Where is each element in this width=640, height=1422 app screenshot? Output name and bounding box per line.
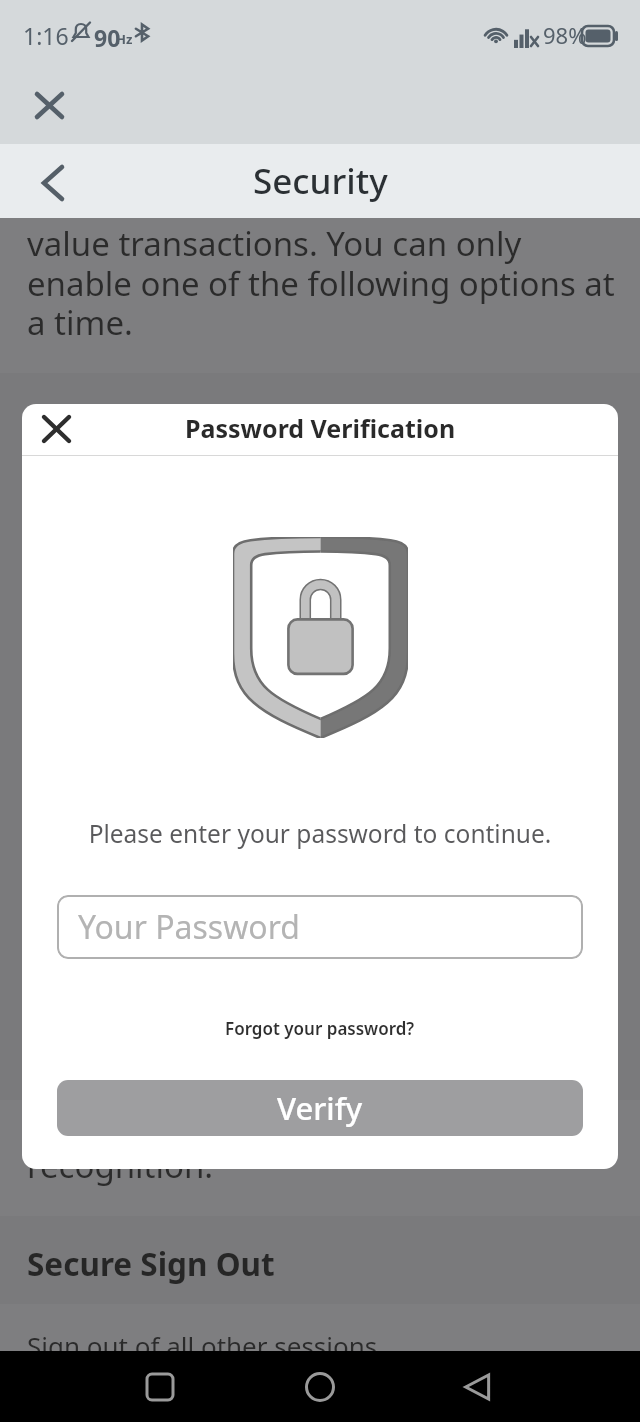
button[interactable]: Your Password <box>57 895 583 959</box>
staticText: Sign out of all other sessions <box>27 1328 378 1363</box>
staticText: 90 <box>94 22 121 53</box>
staticText: Security <box>253 157 388 205</box>
staticText: recognition. <box>27 1143 214 1188</box>
staticText: Forgot your password? <box>225 1017 415 1040</box>
staticText: Your Password <box>78 905 300 949</box>
staticText: 98% <box>543 20 587 50</box>
button[interactable]: Forgot your password? <box>217 1012 423 1045</box>
button[interactable]: Home <box>296 1363 344 1411</box>
button[interactable]: Close <box>23 79 76 132</box>
staticText: Please enter your password to continue. <box>22 817 618 850</box>
button[interactable]: Verify <box>57 1080 583 1136</box>
button[interactable]: Back <box>27 157 79 209</box>
button[interactable]: Recent apps <box>136 1363 184 1411</box>
staticText: Verify <box>277 1087 363 1129</box>
staticText: 1:16 <box>23 20 69 51</box>
button[interactable]: Back <box>454 1363 502 1411</box>
staticText: Password Verification <box>185 411 456 445</box>
staticText: Secure Sign Out <box>27 1242 275 1285</box>
staticText: value transactions. You can only enable … <box>27 221 615 344</box>
staticText: Hz <box>116 30 133 48</box>
button[interactable]: Close dialog <box>30 404 82 454</box>
